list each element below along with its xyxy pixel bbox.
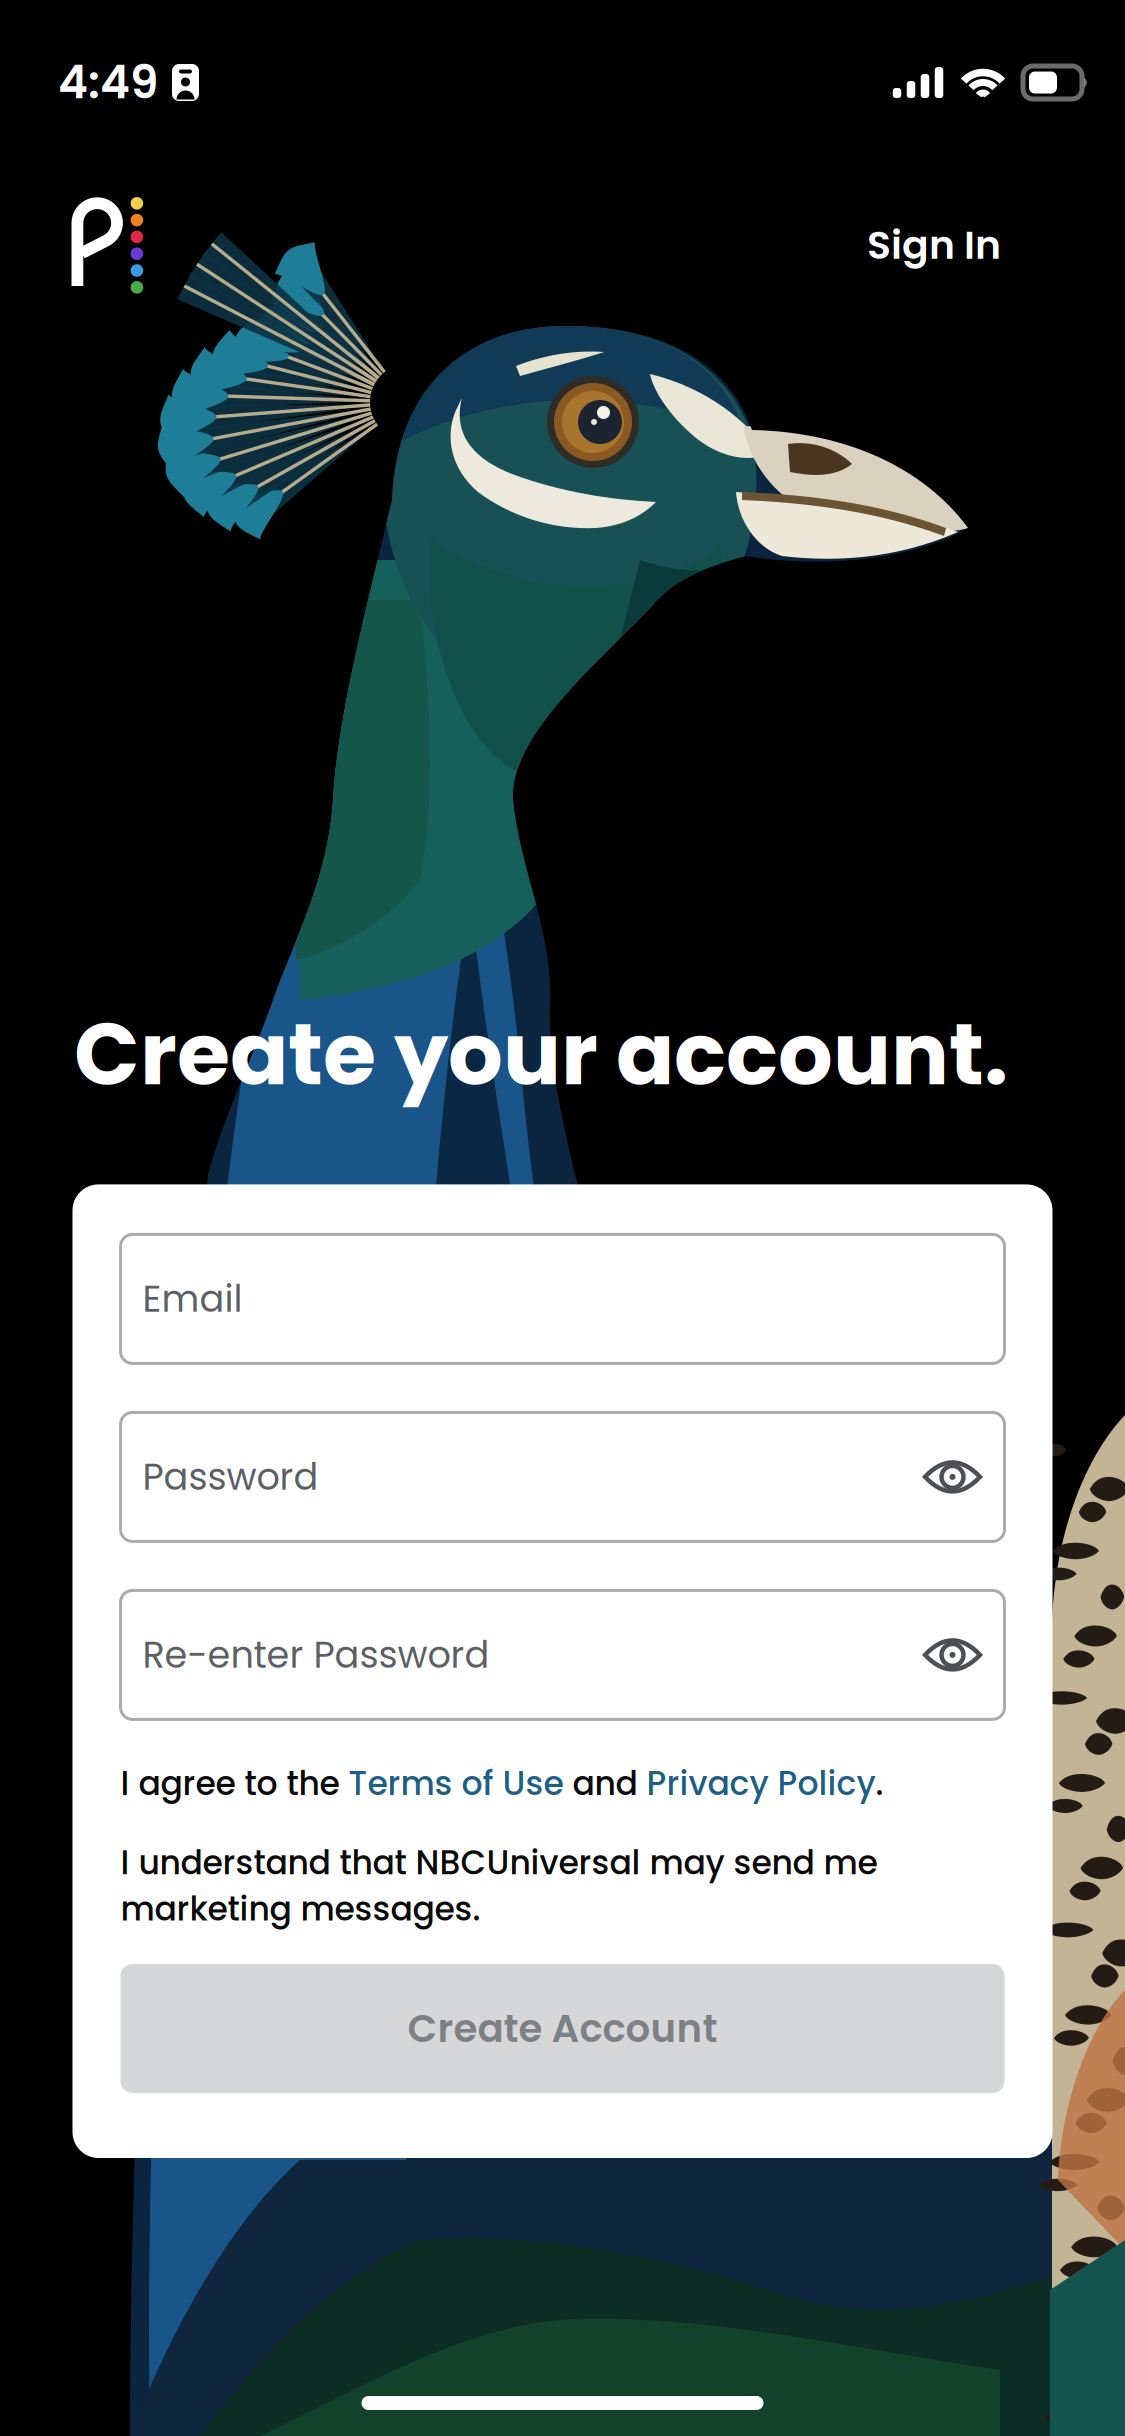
button[interactable]: Show Re-enter Password [916, 1632, 988, 1678]
staticText: I understand that NBCUniversal may send … [120, 1839, 877, 1932]
button[interactable]: Privacy Policy [646, 1760, 875, 1807]
staticText: Email [142, 1273, 242, 1324]
staticText: Terms of Use [348, 1760, 563, 1807]
button[interactable]: Show Password [916, 1454, 988, 1500]
staticText: Sign In [867, 217, 1001, 273]
staticText: Create your account. [74, 994, 1008, 1114]
staticText: Re-enter Password [142, 1629, 489, 1680]
staticText: . [875, 1760, 883, 1807]
button[interactable]: Peacock [71, 197, 144, 293]
button[interactable]: Terms of Use [348, 1760, 563, 1807]
button[interactable]: Sign In [855, 197, 1013, 282]
staticText: Password [142, 1451, 318, 1502]
staticText: 4:49 [58, 51, 158, 114]
staticText: Create Account [407, 2001, 717, 2055]
staticText: I agree to the [120, 1760, 348, 1807]
button[interactable]: Create Account [120, 1964, 1004, 2093]
staticText: Privacy Policy [646, 1760, 875, 1807]
staticText: and [563, 1760, 646, 1807]
